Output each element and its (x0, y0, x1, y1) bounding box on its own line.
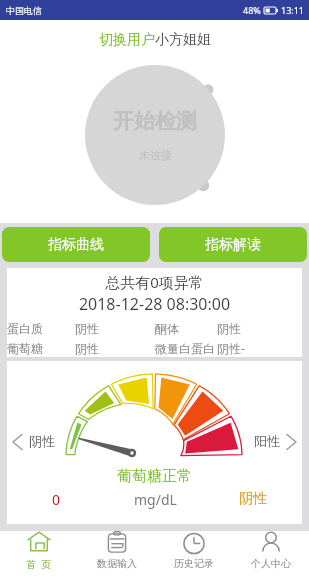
button[interactable]: 指标曲线 (2, 227, 150, 262)
button[interactable]: 指标解读 (159, 227, 307, 262)
staticText: 葡萄糖正常 (117, 467, 192, 486)
staticText: 阴性- (217, 340, 245, 356)
staticText: 阴性 (75, 341, 99, 356)
staticText: 开始检测 (113, 108, 197, 134)
staticText: 微量白蛋白 (155, 341, 215, 356)
staticText: 中国电信 (6, 5, 42, 16)
staticText: 指标解读 (205, 236, 261, 254)
staticText: 蛋白质 (7, 321, 43, 336)
button[interactable]: 数据输入 (78, 531, 155, 570)
staticText: 总共有0项异常 (7, 272, 302, 292)
staticText: 葡萄糖 (7, 341, 43, 356)
staticText: 数据输入 (97, 557, 137, 570)
staticText: 首 页 (26, 557, 52, 571)
staticText: 历史记录 (174, 557, 214, 570)
staticText: 2018-12-28 08:30:00 (7, 293, 302, 315)
staticText: 指标曲线 (48, 236, 104, 254)
staticText: 酮体 (155, 321, 179, 336)
staticText: 阴性 (29, 433, 55, 449)
staticText: mg/dL (134, 490, 177, 509)
staticText: 阳性 (254, 433, 280, 449)
staticText: 13:11 (281, 4, 305, 16)
button[interactable]: 切换用户 (99, 31, 211, 49)
staticText: 阴性 (75, 321, 99, 336)
button[interactable]: 首 页 (0, 531, 78, 571)
staticText: 个人中心 (251, 557, 291, 570)
button[interactable]: 个人中心 (232, 531, 309, 570)
staticText: 阴性 (239, 490, 267, 508)
staticText: 阴性 (217, 321, 241, 336)
staticText: 小方姐姐 (155, 31, 211, 49)
button[interactable]: 开始检测 (113, 108, 197, 162)
staticText: 0 (52, 490, 61, 509)
staticText: 48% (243, 4, 261, 16)
button[interactable]: 历史记录 (155, 531, 232, 570)
staticText: 切换用户 (99, 31, 155, 49)
staticText: 未连接 (139, 148, 172, 162)
